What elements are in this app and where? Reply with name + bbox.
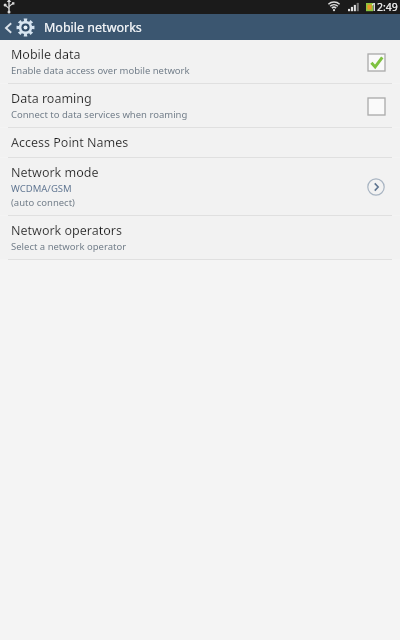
button[interactable]: Network mode: [0, 158, 400, 215]
staticText: WCDMA/GSM: [11, 182, 72, 195]
button[interactable]: Access Point Names: [0, 128, 400, 157]
button[interactable]: Open network mode: [363, 174, 389, 200]
staticText: 12:49: [371, 0, 398, 14]
staticText: Network operators: [11, 222, 122, 239]
staticText: Select a network operator: [11, 240, 127, 253]
staticText: Access Point Names: [11, 134, 129, 151]
staticText: (auto connect): [11, 196, 75, 209]
button[interactable]: Network operators: [0, 216, 400, 259]
button[interactable]: Back: [0, 14, 38, 40]
staticText: Mobile networks: [44, 19, 142, 36]
staticText: Enable data access over mobile network: [11, 64, 190, 77]
button[interactable]: Unchecked: [363, 93, 389, 119]
staticText: Data roaming: [11, 90, 92, 107]
staticText: Connect to data services when roaming: [11, 108, 188, 121]
staticText: Network mode: [11, 164, 99, 181]
button[interactable]: Data roaming: [0, 84, 400, 127]
button[interactable]: Checked: [363, 49, 389, 75]
button[interactable]: Mobile data: [0, 40, 400, 83]
staticText: Mobile data: [11, 46, 81, 63]
